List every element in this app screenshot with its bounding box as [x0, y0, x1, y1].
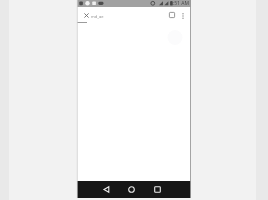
button[interactable] — [178, 11, 187, 20]
button[interactable] — [81, 10, 91, 20]
button[interactable] — [167, 10, 177, 20]
button[interactable] — [125, 183, 138, 196]
button[interactable] — [100, 183, 113, 196]
staticText: md_ae — [91, 14, 104, 19]
button[interactable] — [151, 183, 164, 196]
staticText: 1:51 AM — [170, 0, 190, 7]
